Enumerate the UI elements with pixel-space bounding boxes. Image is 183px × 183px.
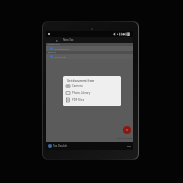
button[interactable]: PDF Files [63, 97, 121, 103]
staticText: Annual 2018 [48, 43, 60, 46]
staticText: Camera [72, 84, 83, 88]
button[interactable]: Add [123, 126, 131, 134]
button[interactable]: Back [54, 38, 59, 43]
staticText: Get document from [67, 79, 95, 83]
button[interactable]: All Receipt [46, 54, 133, 59]
button[interactable]: Camera [63, 83, 121, 89]
button[interactable]: Photo Library [63, 90, 121, 96]
staticText: All Receipt [54, 55, 67, 58]
button[interactable]: All Download [46, 46, 133, 51]
staticText: Photo Library [72, 91, 91, 95]
staticText: Total: 0 Credits [117, 136, 134, 139]
staticText: New Tax [63, 38, 74, 42]
staticText: Tax Double [53, 144, 68, 148]
staticText: All Download [54, 47, 70, 50]
staticText: Recently [48, 51, 56, 54]
staticText: PDF Files [72, 98, 85, 102]
